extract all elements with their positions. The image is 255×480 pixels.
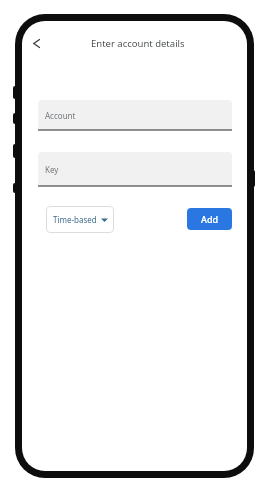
button[interactable]: Account xyxy=(38,100,232,131)
button[interactable]: Key xyxy=(38,152,232,187)
staticText: Enter account details xyxy=(91,37,185,50)
button[interactable] xyxy=(26,33,46,53)
button[interactable]: Time-based xyxy=(46,206,114,233)
button[interactable]: Add xyxy=(187,208,232,230)
staticText: Key xyxy=(45,164,59,175)
staticText: Add xyxy=(201,213,219,225)
staticText: Time-based xyxy=(53,214,97,225)
staticText: Account xyxy=(45,110,76,121)
